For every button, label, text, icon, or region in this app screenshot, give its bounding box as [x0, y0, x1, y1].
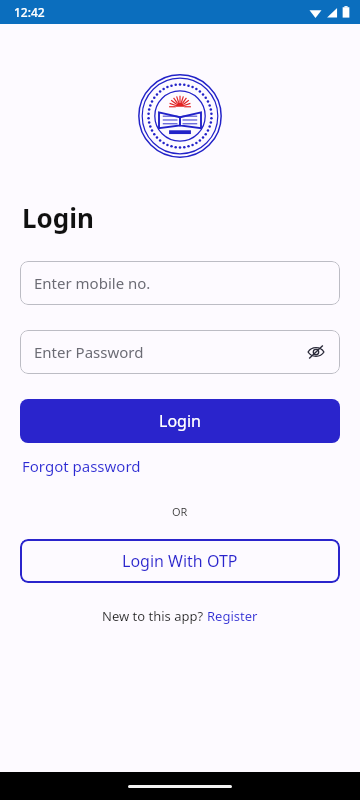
button[interactable]: Show password	[304, 340, 328, 364]
staticText: Register	[207, 607, 258, 625]
staticText: 12:42	[14, 4, 45, 20]
button[interactable]: Login	[20, 399, 340, 443]
button[interactable]: Register	[207, 607, 258, 625]
button[interactable]: Forgot password	[22, 454, 141, 478]
staticText: Enter Password	[34, 342, 144, 362]
button[interactable]: Enter Password	[20, 330, 340, 374]
staticText: Login	[159, 410, 201, 432]
staticText: Forgot password	[22, 456, 141, 476]
button[interactable]: Login With OTP	[20, 539, 340, 583]
staticText: OR	[172, 504, 188, 519]
button[interactable]: Enter mobile no.	[20, 261, 340, 305]
staticText: Login	[22, 200, 94, 235]
staticText: Enter mobile no.	[34, 273, 151, 293]
staticText: New to this app?	[102, 607, 207, 625]
staticText: Login With OTP	[122, 550, 238, 572]
